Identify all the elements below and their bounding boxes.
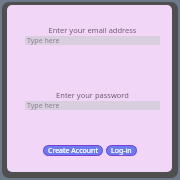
staticText: Type here xyxy=(27,101,60,110)
staticText: Type here xyxy=(27,36,60,45)
button[interactable]: Create Account xyxy=(43,145,103,156)
button[interactable]: Type here xyxy=(25,36,160,45)
button[interactable]: Log-in xyxy=(106,145,137,156)
button[interactable]: Type here xyxy=(25,101,160,110)
staticText: Enter your password xyxy=(21,90,164,100)
staticText: Enter your email address xyxy=(21,25,164,35)
staticText: Log-in xyxy=(111,146,132,156)
staticText: Create Account xyxy=(48,146,98,156)
